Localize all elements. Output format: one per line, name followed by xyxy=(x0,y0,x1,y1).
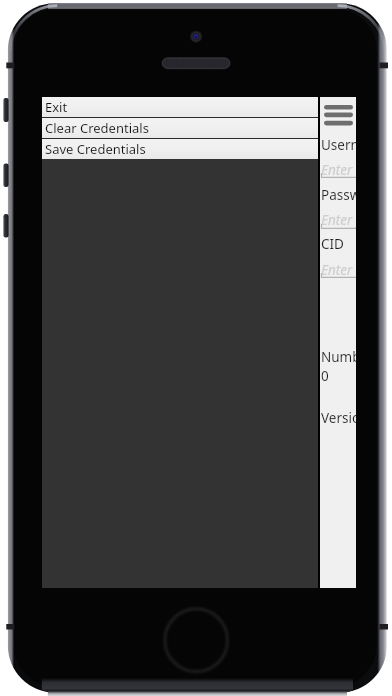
staticText: Enter CID xyxy=(321,261,356,279)
button[interactable]: Open navigation menu xyxy=(324,103,354,125)
staticText: Version 1.0 xyxy=(321,409,356,427)
staticText: Password xyxy=(321,186,356,204)
staticText: Enter username xyxy=(321,161,356,179)
staticText: Clear Credentials xyxy=(45,119,149,137)
staticText: Number of records xyxy=(321,348,356,366)
staticText: Save Credentials xyxy=(45,140,146,158)
staticText: 0 xyxy=(321,367,329,385)
staticText: Username xyxy=(321,136,356,154)
button[interactable]: Exit xyxy=(42,97,318,117)
staticText: CID xyxy=(321,235,344,253)
staticText: Exit xyxy=(45,98,68,116)
button[interactable]: Clear Credentials xyxy=(42,118,318,138)
staticText: Enter password xyxy=(321,211,356,229)
button[interactable]: Save Credentials xyxy=(42,139,318,159)
